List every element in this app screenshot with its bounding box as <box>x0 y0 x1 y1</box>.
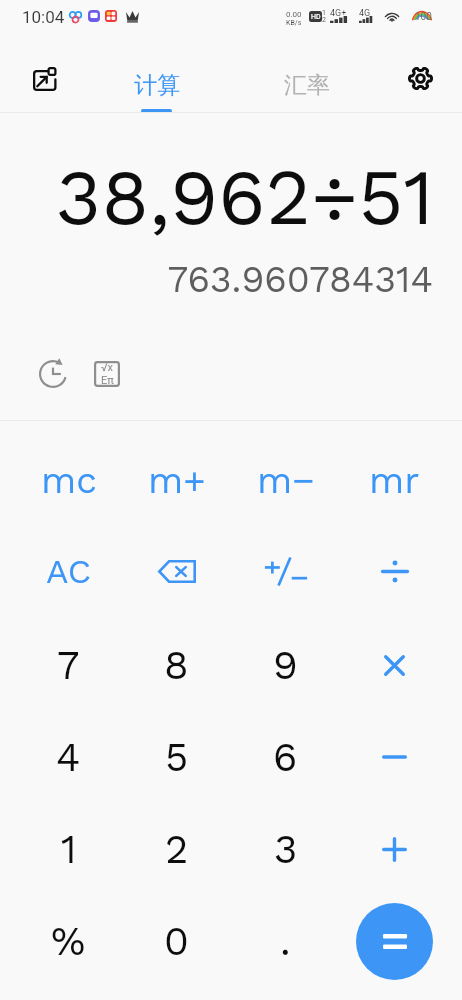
staticText: m+ <box>148 459 206 502</box>
button[interactable]: 4 <box>14 711 123 803</box>
button[interactable]: Plus minus <box>231 525 340 617</box>
button[interactable]: 汇率 <box>251 45 362 112</box>
staticText: 7 <box>57 642 80 689</box>
staticText: m− <box>257 459 315 502</box>
button[interactable]: 8 <box>122 619 231 711</box>
button[interactable]: 6 <box>231 711 340 803</box>
staticText: 4G <box>359 8 371 19</box>
button[interactable]: mr <box>340 434 449 526</box>
staticText: 1 <box>322 9 326 17</box>
staticText: 0.00 <box>286 10 302 19</box>
button[interactable]: m+ <box>122 434 231 526</box>
button[interactable]: 9 <box>231 619 340 711</box>
button[interactable]: 计算 <box>101 45 212 112</box>
staticText: Eπ <box>101 374 114 387</box>
staticText: % <box>51 918 86 965</box>
staticText: 2 <box>322 16 326 24</box>
button[interactable]: Equals <box>356 903 433 980</box>
button[interactable]: Backspace <box>122 525 231 617</box>
staticText: 4G+ <box>330 8 347 19</box>
staticText: 2 <box>165 826 189 873</box>
staticText: 汇率 <box>284 71 330 100</box>
button[interactable]: mc <box>14 434 123 526</box>
button[interactable]: 1 <box>14 803 123 895</box>
staticText: AC <box>46 551 92 591</box>
staticText: √x <box>101 361 114 374</box>
button[interactable]: History <box>31 352 75 396</box>
button[interactable]: AC <box>14 525 123 617</box>
staticText: KB/s <box>286 19 302 27</box>
button[interactable]: Floating window <box>21 55 68 102</box>
staticText: 9 <box>273 642 298 689</box>
staticText: 4 <box>56 734 81 781</box>
staticText: 38,962÷51 <box>0 151 434 242</box>
button[interactable]: . <box>231 895 340 987</box>
button[interactable]: Plus <box>340 803 449 895</box>
staticText: 763.960784314 <box>0 258 433 301</box>
button[interactable]: Multiply <box>340 619 449 711</box>
button[interactable]: % <box>14 895 123 987</box>
staticText: HD <box>311 13 321 21</box>
button[interactable]: Scientific calculator <box>85 352 129 396</box>
staticText: mc <box>41 459 97 502</box>
staticText: 6 <box>273 734 298 781</box>
button[interactable]: 3 <box>231 803 340 895</box>
button[interactable]: 2 <box>122 803 231 895</box>
staticText: . <box>280 918 291 965</box>
button[interactable]: 5 <box>122 711 231 803</box>
button[interactable]: m− <box>231 434 340 526</box>
staticText: 100 <box>415 11 432 23</box>
staticText: 10:04 <box>22 7 65 27</box>
button[interactable]: Minus <box>340 711 449 803</box>
staticText: 0 <box>164 918 189 965</box>
button[interactable]: Divide <box>340 525 449 617</box>
staticText: 计算 <box>134 71 180 100</box>
staticText: 5 <box>165 734 189 781</box>
button[interactable]: Settings <box>397 55 444 102</box>
staticText: mr <box>369 459 420 502</box>
staticText: 1 <box>61 826 77 873</box>
staticText: 3 <box>274 826 298 873</box>
staticText: 8 <box>164 642 189 689</box>
button[interactable]: 0 <box>122 895 231 987</box>
button[interactable]: 7 <box>14 619 123 711</box>
